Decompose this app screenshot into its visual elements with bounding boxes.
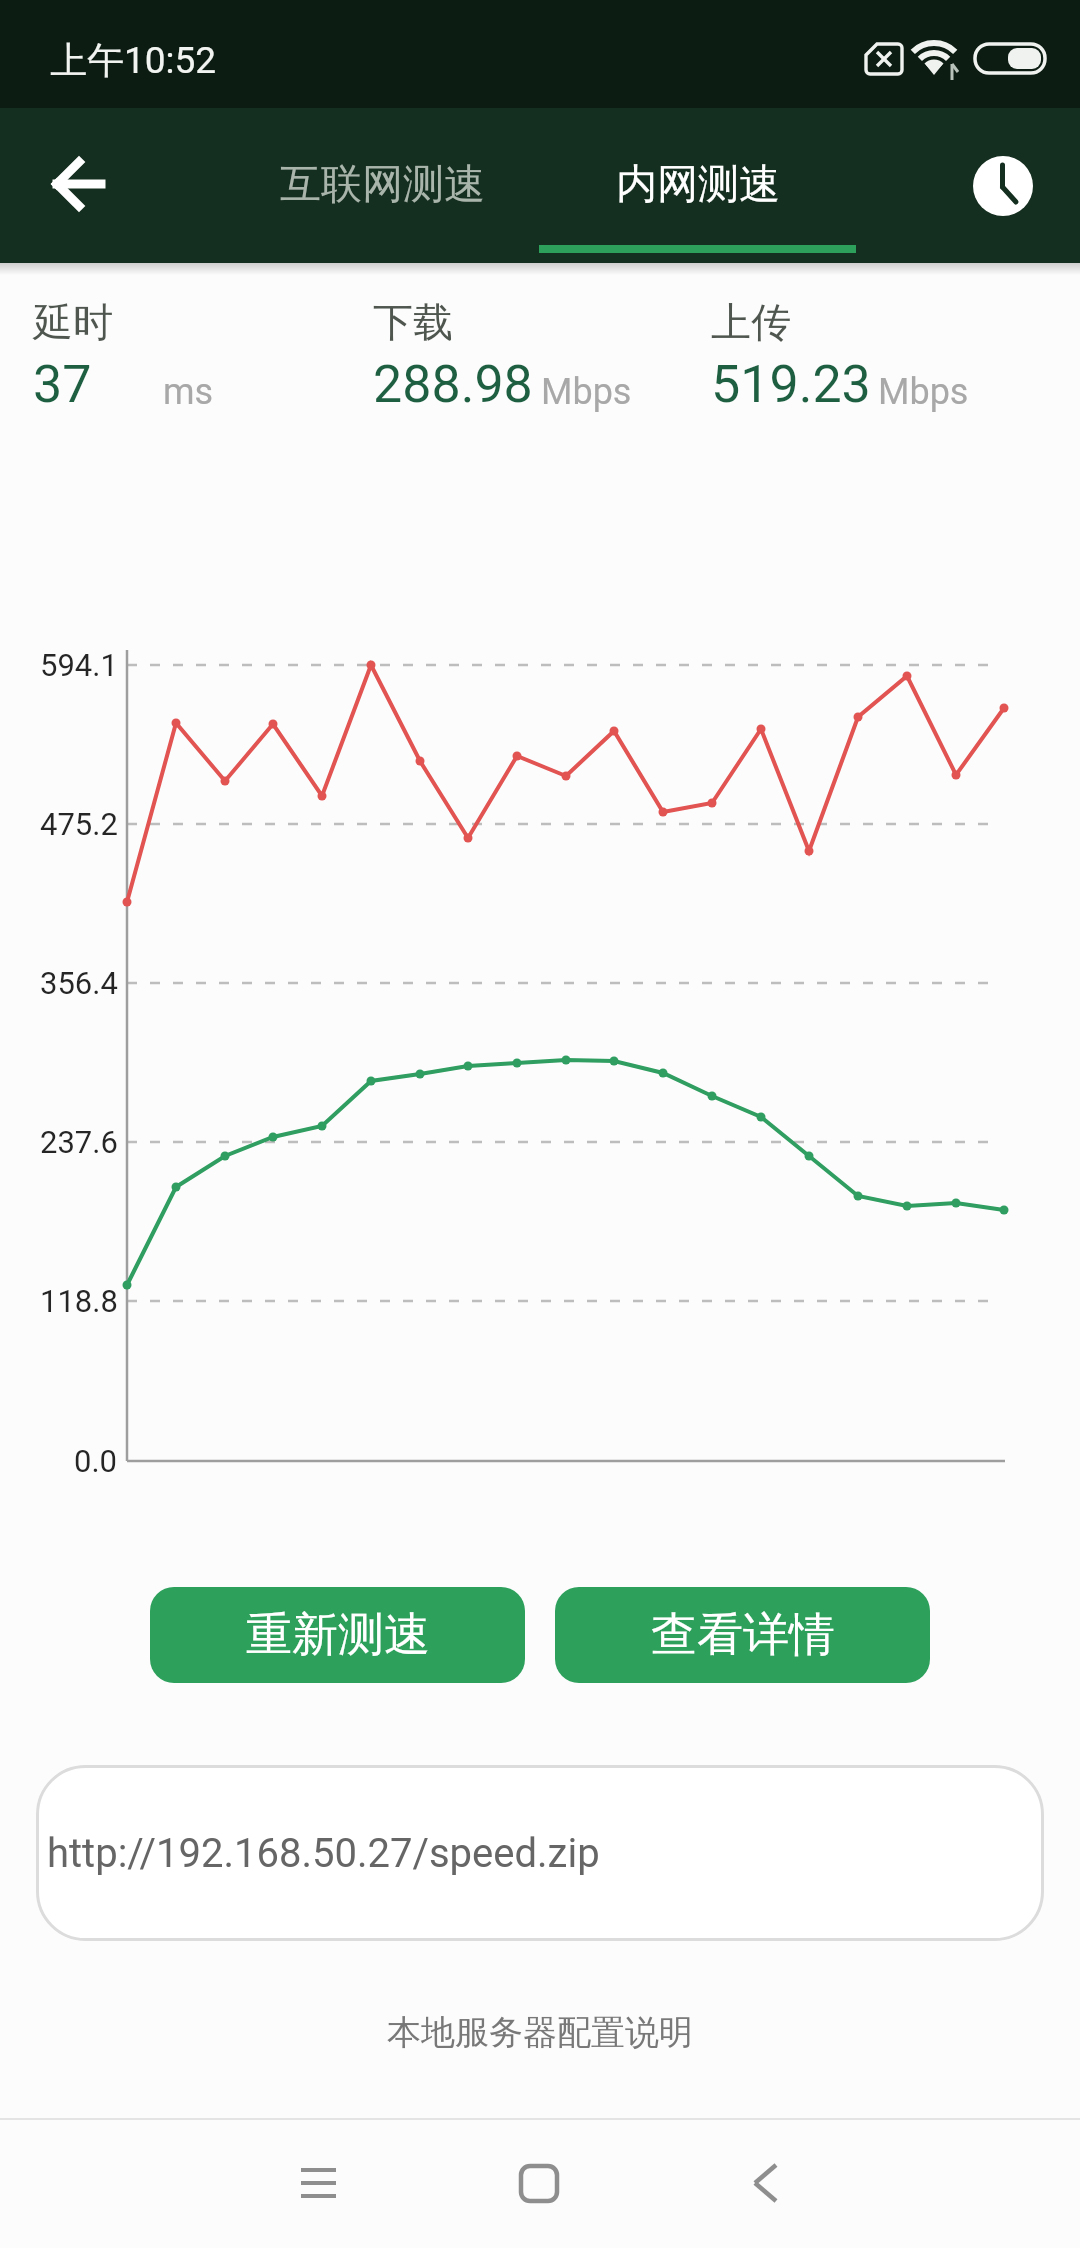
staticText: Mbps [541,371,632,413]
staticText: 上传 [711,297,791,347]
staticText: 上午10:52 [50,37,217,84]
staticText: http://192.168.50.27/speed.zip [47,1830,600,1877]
staticText: 本地服务器配置说明 [387,2011,693,2054]
staticText: 594.1 [40,647,118,683]
staticText: 互联网测速 [280,159,485,211]
staticText: 延时 [33,297,113,347]
staticText: 内网测速 [616,159,780,211]
staticText: 重新测速 [246,1606,430,1664]
staticText: 475.2 [40,806,118,842]
staticText: 519.23 [711,354,871,415]
staticText: 查看详情 [651,1606,835,1664]
staticText: 288.98 [373,354,533,415]
staticText: 356.4 [40,965,118,1001]
staticText: 37 [33,354,92,415]
staticText: 下载 [373,297,453,347]
staticText: 0.0 [74,1443,118,1479]
staticText: Mbps [878,371,969,413]
staticText: 237.6 [40,1124,118,1160]
staticText: 118.8 [40,1283,118,1319]
staticText: ms [163,371,214,413]
